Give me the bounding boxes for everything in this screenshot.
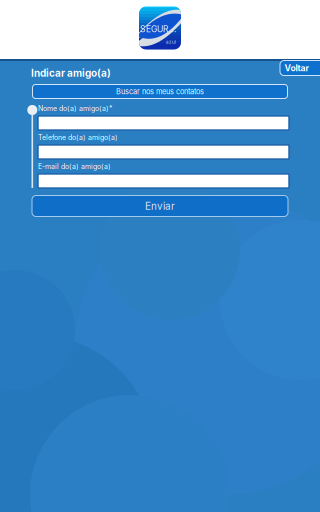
- staticText: Nome do(a) amigo(a)*: [38, 104, 112, 113]
- staticText: Enviar: [145, 200, 175, 212]
- staticText: Buscar nos meus contatos: [116, 87, 204, 96]
- staticText: Telefone do(a) amigo(a): [38, 133, 118, 142]
- staticText: Voltar: [284, 63, 309, 73]
- button[interactable]: Enviar: [32, 195, 288, 216]
- button[interactable]: Voltar: [280, 60, 320, 75]
- staticText: E-mail do(a) amigo(a): [38, 162, 111, 171]
- staticText: azul: [166, 39, 176, 45]
- staticText: Indicar amigo(a): [31, 67, 111, 79]
- staticText: SEGUROS: [140, 24, 180, 34]
- button[interactable]: Buscar nos meus contatos: [32, 84, 287, 98]
